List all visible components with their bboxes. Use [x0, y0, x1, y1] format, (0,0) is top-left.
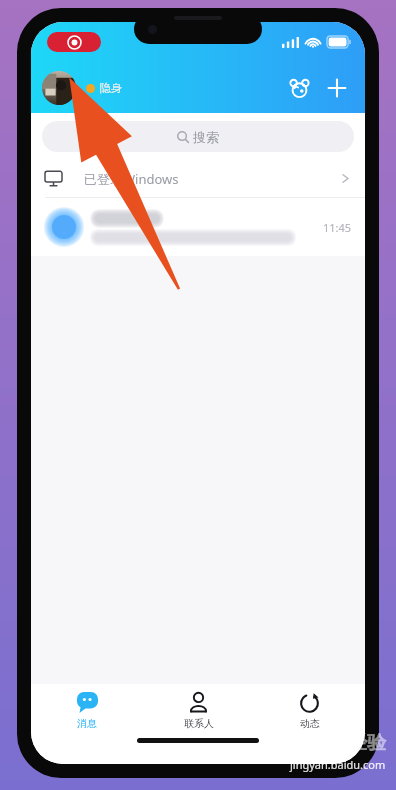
staticText: jingyan.baidu.com [290, 757, 386, 772]
button[interactable]: 11:45 [31, 198, 365, 256]
staticText: 搜索 [193, 129, 219, 145]
staticText: 11:45 [323, 220, 352, 235]
staticText: Baidu 经验 [289, 729, 386, 755]
button[interactable]: 动态 [254, 684, 365, 738]
button[interactable]: 搜索 [42, 121, 354, 152]
staticText: 已登录Windows [84, 170, 179, 188]
button[interactable]: Recording [47, 32, 101, 52]
staticText: 联系人 [184, 717, 214, 730]
staticText: 隐身 [100, 81, 122, 95]
button[interactable]: Profile [42, 71, 76, 105]
button[interactable]: Pet [284, 73, 314, 103]
staticText: 动态 [300, 717, 320, 730]
button[interactable]: 已登录Windows [31, 160, 365, 197]
staticText: 消息 [77, 717, 97, 730]
button[interactable]: 联系人 [143, 684, 254, 738]
button[interactable]: Add [322, 73, 352, 103]
button[interactable]: 消息 [31, 684, 143, 738]
